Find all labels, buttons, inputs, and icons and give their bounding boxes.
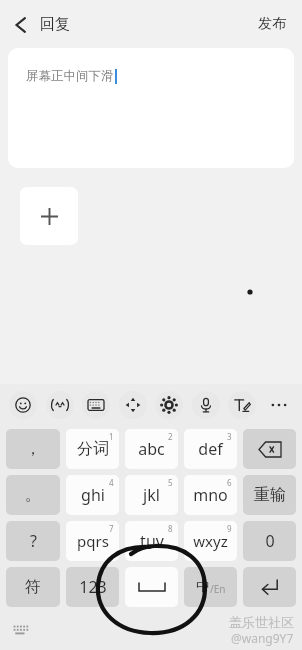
staticText: ? bbox=[30, 530, 37, 552]
staticText: 123 bbox=[79, 576, 107, 598]
staticText: 1 bbox=[109, 431, 114, 442]
button[interactable]: ， bbox=[6, 429, 60, 469]
button[interactable]: Keyboard layout bbox=[82, 391, 110, 419]
staticText: 屏幕正中间下滑 bbox=[26, 68, 114, 84]
button[interactable]: Handwriting bbox=[228, 391, 256, 419]
staticText: 重输 bbox=[254, 485, 286, 505]
button[interactable]: 发布 bbox=[242, 5, 302, 43]
button[interactable]: Back bbox=[0, 7, 80, 42]
staticText: 9 bbox=[227, 523, 232, 534]
staticText: 回复 bbox=[40, 15, 70, 34]
button[interactable]: Switch Chinese English bbox=[184, 567, 237, 607]
staticText: 符 bbox=[25, 577, 41, 597]
button[interactable]: 。 bbox=[6, 475, 60, 515]
staticText: 6 bbox=[227, 477, 232, 488]
staticText: 。 bbox=[25, 485, 41, 505]
other: Back bbox=[14, 16, 28, 34]
staticText: 中 bbox=[196, 578, 210, 596]
button[interactable]: wxyz bbox=[184, 521, 237, 561]
button[interactable]: jkl bbox=[125, 475, 178, 515]
staticText: 4 bbox=[109, 477, 114, 488]
staticText: ghi bbox=[81, 484, 105, 506]
staticText: jkl bbox=[143, 484, 160, 506]
button[interactable]: mno bbox=[184, 475, 237, 515]
staticText: 发布 bbox=[258, 15, 286, 33]
button[interactable]: Settings bbox=[155, 391, 183, 419]
button[interactable]: ? bbox=[6, 521, 60, 561]
staticText: 盖乐世社区 bbox=[229, 614, 294, 630]
button[interactable]: abc bbox=[125, 429, 178, 469]
button[interactable]: ghi bbox=[66, 475, 119, 515]
button[interactable]: Emoji bbox=[9, 391, 37, 419]
staticText: wxyz bbox=[193, 531, 228, 551]
button[interactable]: 分词 bbox=[66, 429, 119, 469]
staticText: def bbox=[198, 438, 223, 460]
staticText: /En bbox=[210, 582, 226, 596]
button[interactable]: Space bbox=[125, 567, 178, 607]
staticText: 5 bbox=[168, 477, 173, 488]
staticText: ， bbox=[25, 439, 41, 459]
button[interactable]: 屏幕正中间下滑 bbox=[8, 48, 294, 168]
button[interactable]: Enter bbox=[243, 567, 296, 607]
button[interactable]: 重输 bbox=[243, 475, 296, 515]
staticText: 2 bbox=[168, 431, 173, 442]
staticText: abc bbox=[138, 438, 165, 460]
button[interactable]: 123 bbox=[66, 567, 119, 607]
button[interactable]: tuv bbox=[125, 521, 178, 561]
button[interactable]: Kaomoji bbox=[46, 391, 74, 419]
staticText: tuv bbox=[140, 530, 164, 552]
staticText: 3 bbox=[227, 431, 232, 442]
staticText: @wang9Y7 bbox=[231, 630, 294, 646]
button[interactable]: def bbox=[184, 429, 237, 469]
button[interactable]: More bbox=[265, 391, 293, 419]
staticText: mno bbox=[193, 484, 228, 506]
staticText: pqrs bbox=[77, 531, 109, 551]
staticText: 8 bbox=[168, 523, 173, 534]
staticText: 7 bbox=[109, 523, 114, 534]
button[interactable]: Backspace bbox=[243, 429, 296, 469]
staticText: 分词 bbox=[77, 439, 109, 459]
button[interactable]: Add image bbox=[20, 187, 78, 245]
button[interactable]: 0 bbox=[243, 521, 296, 561]
button[interactable]: pqrs bbox=[66, 521, 119, 561]
button[interactable]: 符 bbox=[6, 567, 60, 607]
staticText: 0 bbox=[265, 530, 275, 552]
button[interactable]: Switch keyboard bbox=[8, 617, 34, 643]
button[interactable]: Move cursor bbox=[119, 391, 147, 419]
button[interactable]: Voice input bbox=[192, 391, 220, 419]
